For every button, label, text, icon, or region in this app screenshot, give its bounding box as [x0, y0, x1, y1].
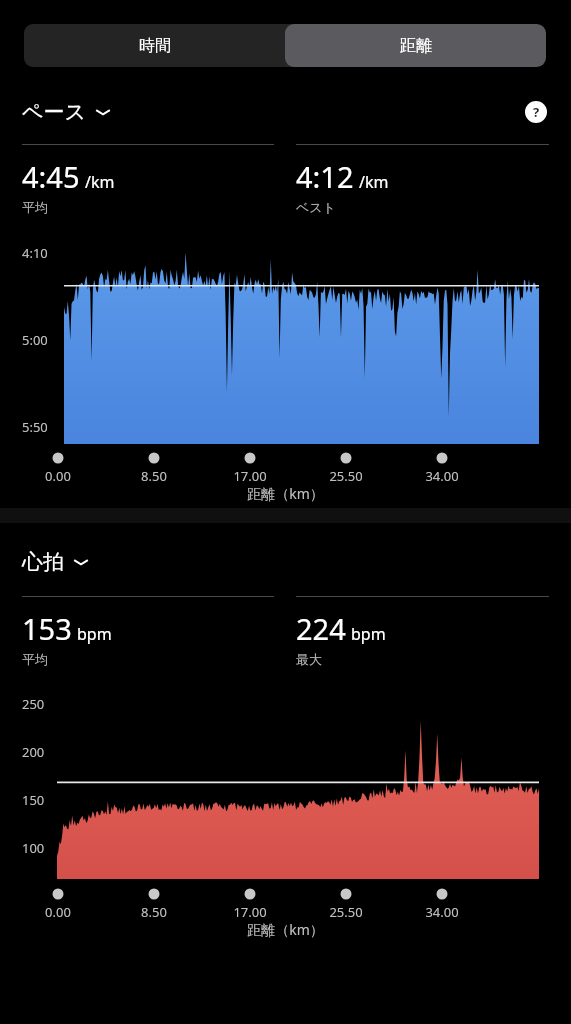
- staticText: ベスト: [296, 199, 336, 215]
- staticText: 8.50: [124, 467, 184, 485]
- staticText: 距離（km）: [0, 920, 571, 939]
- staticText: 5:50: [22, 418, 48, 436]
- staticText: bpm: [77, 623, 112, 645]
- staticText: 4:10: [22, 244, 48, 262]
- staticText: 平均: [22, 651, 48, 667]
- staticText: 0.00: [28, 903, 88, 921]
- staticText: 100: [22, 839, 45, 857]
- button[interactable]: 距離: [285, 24, 546, 67]
- staticText: 4:12: [296, 157, 354, 196]
- button[interactable]: ヘルプ: [523, 99, 549, 125]
- staticText: 25.50: [316, 903, 376, 921]
- staticText: 8.50: [124, 903, 184, 921]
- staticText: /km: [359, 171, 389, 193]
- staticText: 224: [296, 609, 346, 648]
- button[interactable]: 時間: [24, 24, 285, 67]
- staticText: 250: [22, 695, 45, 713]
- button[interactable]: ペース: [0, 97, 523, 127]
- staticText: 5:00: [22, 331, 48, 349]
- staticText: /km: [85, 171, 115, 193]
- staticText: 34.00: [412, 903, 472, 921]
- staticText: 4:45: [22, 157, 80, 196]
- staticText: 平均: [22, 199, 48, 215]
- staticText: 距離（km）: [0, 484, 571, 503]
- staticText: 時間: [139, 36, 171, 56]
- button[interactable]: 心拍: [0, 545, 571, 579]
- staticText: 150: [22, 791, 45, 809]
- staticText: 17.00: [220, 903, 280, 921]
- staticText: 200: [22, 743, 45, 761]
- staticText: 心拍: [22, 549, 64, 575]
- staticText: bpm: [351, 623, 386, 645]
- staticText: 153: [22, 609, 72, 648]
- staticText: 最大: [296, 651, 322, 667]
- staticText: 距離: [400, 36, 432, 56]
- staticText: ペース: [22, 99, 86, 125]
- staticText: 34.00: [412, 467, 472, 485]
- staticText: 0.00: [28, 467, 88, 485]
- staticText: 17.00: [220, 467, 280, 485]
- staticText: 25.50: [316, 467, 376, 485]
- staticText: ?: [533, 103, 540, 121]
